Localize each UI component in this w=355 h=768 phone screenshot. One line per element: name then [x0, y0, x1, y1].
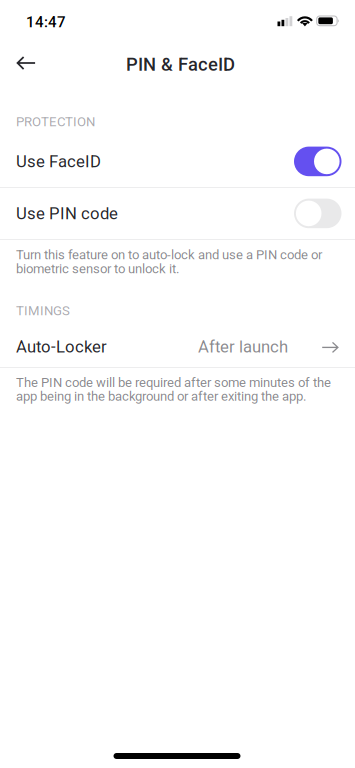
- staticText: TIMINGS: [16, 303, 70, 319]
- staticText: Use FaceID: [16, 152, 101, 171]
- staticText: Auto-Locker: [16, 337, 107, 357]
- button[interactable]: Auto-Locker: [0, 327, 355, 367]
- staticText: Turn this feature on to auto-lock and us…: [16, 247, 322, 276]
- button[interactable]: Back: [2, 41, 46, 85]
- staticText: Use PIN code: [16, 204, 118, 223]
- staticText: 14:47: [26, 13, 66, 31]
- staticText: After launch: [198, 337, 288, 357]
- staticText: The PIN code will be required after some…: [16, 375, 331, 404]
- staticText: PIN & FaceID: [126, 54, 235, 75]
- staticText: PROTECTION: [16, 114, 95, 129]
- button[interactable]: Use PIN code: [0, 189, 355, 240]
- button[interactable]: Use FaceID: [0, 137, 355, 188]
